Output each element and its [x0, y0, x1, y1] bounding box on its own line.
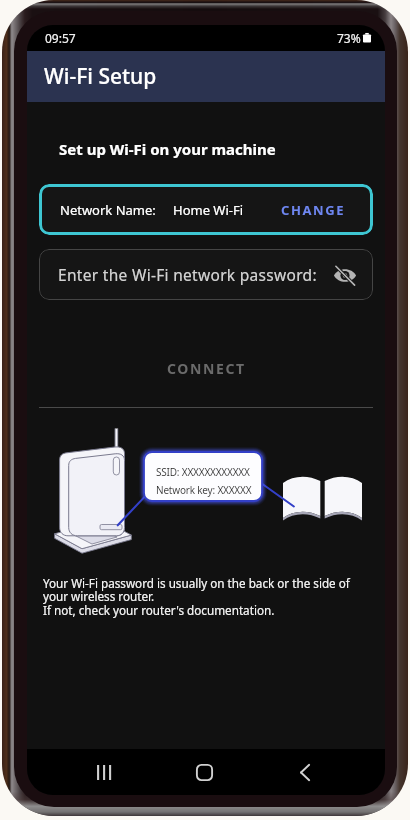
staticText: Network Name:: [60, 201, 156, 219]
staticText: CONNECT: [167, 359, 246, 378]
staticText: 09:57: [45, 30, 76, 46]
button[interactable]: Show password: [331, 261, 359, 289]
staticText: SSID: XXXXXXXXXXXX: [156, 465, 250, 479]
button[interactable]: Network Name:: [39, 184, 373, 235]
button[interactable]: Home: [180, 749, 228, 795]
staticText: Home Wi-Fi: [173, 201, 244, 219]
staticText: Set up Wi-Fi on your machine: [59, 139, 276, 159]
staticText: Enter the Wi-Fi network password:: [58, 264, 317, 285]
staticText: 73%: [337, 30, 361, 46]
staticText: Network key: XXXXXX: [156, 483, 252, 497]
button[interactable]: Enter the Wi-Fi network password:: [39, 249, 373, 300]
staticText: Wi-Fi Setup: [44, 62, 157, 91]
button[interactable]: Recent apps: [80, 749, 128, 795]
staticText: Your Wi-Fi password is usually on the ba…: [43, 575, 350, 618]
button[interactable]: CONNECT: [27, 357, 385, 379]
staticText: CHANGE: [281, 201, 346, 219]
button[interactable]: Back: [281, 749, 329, 795]
